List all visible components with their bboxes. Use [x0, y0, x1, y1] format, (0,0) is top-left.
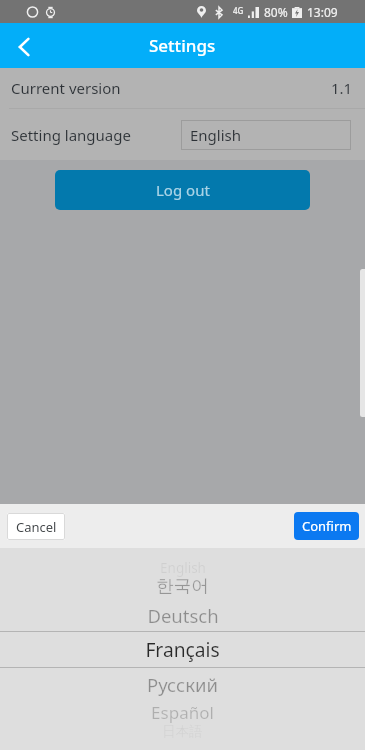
staticText: 한국어 — [156, 575, 209, 597]
staticText: Русский — [147, 672, 218, 697]
button[interactable]: English — [0, 555, 365, 581]
staticText: Setting language — [11, 125, 131, 145]
button[interactable]: Français — [0, 636, 365, 662]
button[interactable]: Log out — [55, 170, 310, 210]
staticText: Confirm — [302, 517, 352, 535]
button[interactable]: Current version — [0, 68, 365, 108]
button[interactable]: English — [181, 120, 351, 150]
button[interactable]: Cancel — [7, 513, 65, 540]
staticText: 1.1 — [331, 78, 353, 98]
staticText: Cancel — [16, 518, 57, 536]
button[interactable]: Español — [0, 699, 365, 725]
button[interactable]: Русский — [0, 671, 365, 697]
staticText: Log out — [156, 180, 210, 200]
staticText: 80% — [264, 4, 288, 20]
staticText: Current version — [11, 78, 121, 98]
staticText: Français — [145, 636, 220, 662]
button[interactable]: 한국어 — [0, 573, 365, 599]
staticText: English — [160, 559, 206, 577]
staticText: 13:09 — [307, 4, 338, 20]
staticText: Deutsch — [147, 603, 219, 628]
button[interactable]: Back — [0, 23, 45, 68]
staticText: English — [190, 125, 242, 145]
button[interactable]: Confirm — [294, 512, 359, 540]
staticText: Español — [151, 701, 214, 724]
staticText: Settings — [149, 34, 216, 57]
button[interactable]: Deutsch — [0, 602, 365, 628]
staticText: 4G — [233, 5, 244, 16]
